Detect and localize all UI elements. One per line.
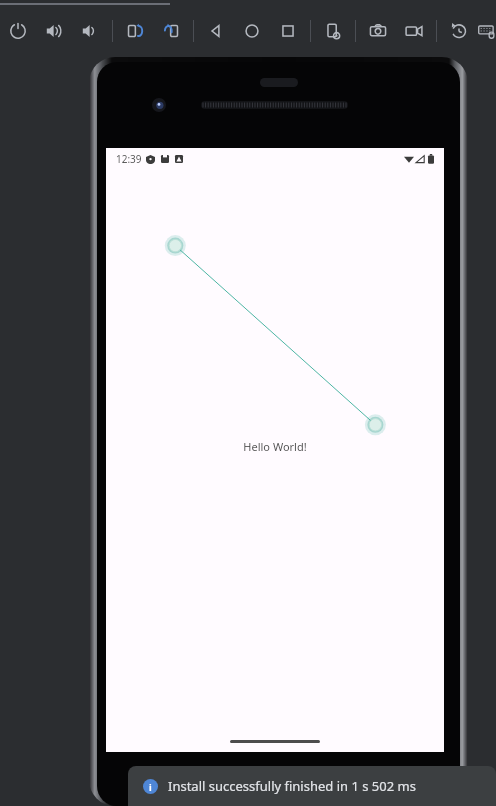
staticText: Install successfully finished in 1 s 502… <box>168 777 416 795</box>
button[interactable]: Home gesture <box>230 740 320 743</box>
button[interactable]: Keyboard <box>477 14 496 48</box>
button[interactable]: Rotate right <box>153 14 189 48</box>
button[interactable]: Back <box>198 14 234 48</box>
button[interactable]: Overview <box>270 14 306 48</box>
button[interactable]: Record screen <box>396 14 432 48</box>
button[interactable]: Power <box>0 14 36 48</box>
staticText: i <box>149 781 152 793</box>
button[interactable]: Device settings <box>315 14 351 48</box>
button[interactable]: Home <box>234 14 270 48</box>
button[interactable]: i <box>128 766 496 806</box>
button[interactable]: Rotate left <box>117 14 153 48</box>
staticText: Hello World! <box>243 439 307 454</box>
button[interactable]: History <box>441 14 477 48</box>
staticText: 12:39 <box>116 152 142 166</box>
button[interactable]: Volume up <box>36 14 72 48</box>
button[interactable]: Volume down <box>72 14 108 48</box>
button[interactable]: Screenshot <box>360 14 396 48</box>
